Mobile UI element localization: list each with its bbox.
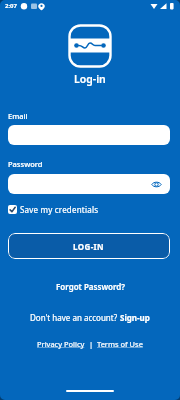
staticText: |: [85, 339, 97, 349]
button[interactable]: [8, 125, 170, 145]
staticText: Email: [8, 111, 28, 121]
button[interactable]: Forgot Password?: [56, 281, 125, 292]
button[interactable]: Terms of Use: [97, 339, 143, 349]
staticText: Don't have an account?: [30, 312, 120, 323]
button[interactable]: Privacy Policy: [37, 339, 85, 349]
staticText: 2:07: [5, 2, 17, 10]
button[interactable]: LOG-IN: [8, 233, 170, 259]
button[interactable]: [8, 174, 170, 194]
staticText: Log-in: [74, 72, 106, 86]
staticText: Save my credentials: [20, 204, 99, 215]
staticText: LOG-IN: [73, 241, 105, 252]
staticText: Password: [8, 159, 43, 169]
button[interactable]: Save my credentials: [8, 204, 99, 215]
button[interactable]: Sign-up: [120, 312, 150, 323]
